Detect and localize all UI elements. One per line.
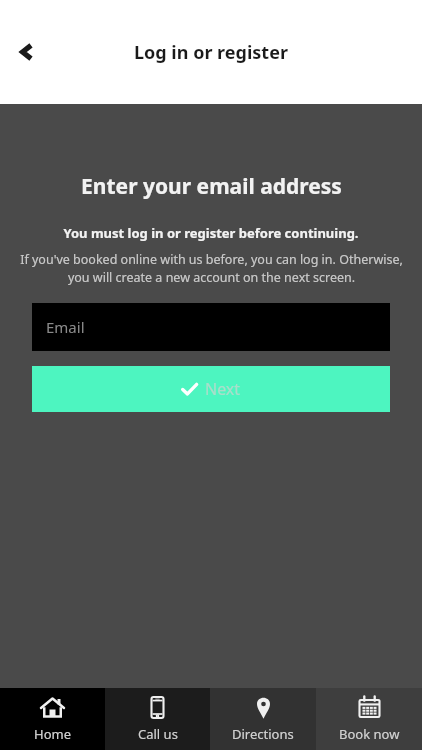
button[interactable]: Email: [32, 303, 390, 351]
button[interactable]: Directions: [210, 688, 316, 750]
button[interactable]: Back: [4, 29, 50, 75]
button[interactable]: Book now: [316, 688, 422, 750]
staticText: You must log in or register before conti…: [63, 224, 359, 242]
button[interactable]: Next: [32, 366, 390, 412]
staticText: Home: [34, 725, 71, 743]
staticText: If you've booked online with us before, …: [20, 251, 403, 286]
staticText: Log in or register: [134, 40, 288, 65]
staticText: Directions: [232, 725, 294, 743]
button[interactable]: Call us: [105, 688, 210, 750]
staticText: Enter your email address: [81, 172, 342, 201]
staticText: Email: [46, 317, 85, 337]
staticText: Book now: [339, 725, 400, 743]
staticText: Call us: [138, 725, 178, 743]
staticText: Next: [205, 378, 241, 400]
button[interactable]: Home: [0, 688, 105, 750]
